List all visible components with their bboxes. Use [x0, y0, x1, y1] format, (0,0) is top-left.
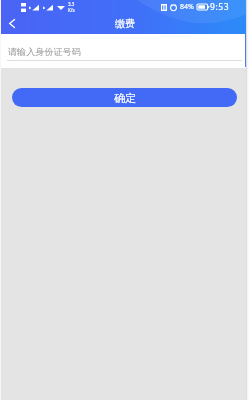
staticText: 缴费 [115, 17, 135, 30]
staticText: 84% [180, 2, 194, 12]
button[interactable]: 请输入身份证号码 [0, 34, 249, 60]
staticText: 确定 [114, 91, 136, 105]
staticText: 3.3 [68, 1, 75, 7]
staticText: 请输入身份证号码 [8, 46, 81, 57]
button[interactable]: 确定 [12, 88, 237, 107]
button[interactable]: Back [2, 13, 22, 33]
staticText: 9:53 [210, 1, 230, 13]
staticText: K/s [68, 7, 75, 13]
